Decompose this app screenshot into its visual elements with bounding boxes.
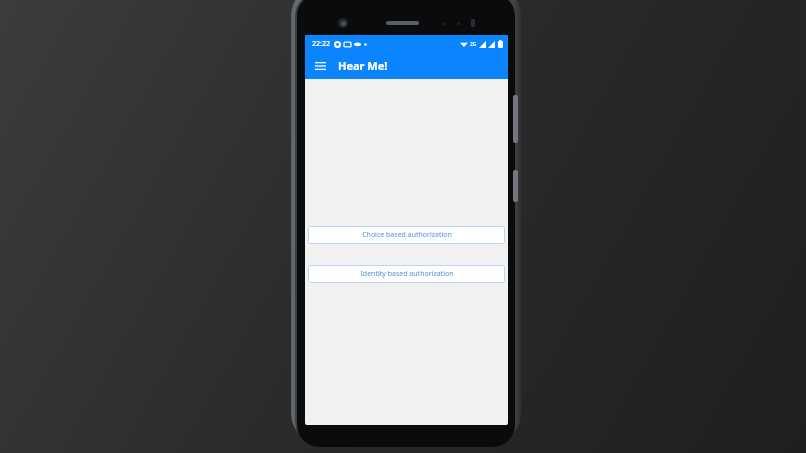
button[interactable]: Choice based authorization: [308, 226, 505, 244]
staticText: Identity based authorization: [360, 269, 454, 279]
button[interactable]: Identity based authorization: [308, 265, 505, 283]
staticText: Hear Me!: [338, 58, 388, 73]
staticText: 2G: [470, 41, 477, 48]
staticText: 22:22: [312, 39, 330, 49]
staticText: Choice based authorization: [362, 230, 452, 240]
button[interactable]: Open navigation drawer: [310, 56, 330, 76]
